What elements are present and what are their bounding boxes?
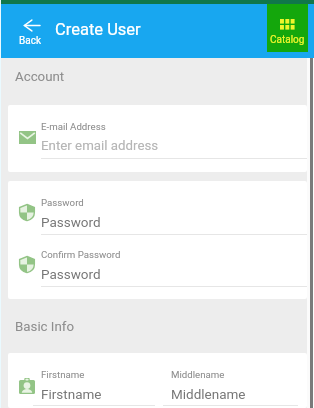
staticText: Back [19,35,41,47]
button[interactable]: Password [8,181,307,233]
button[interactable]: E-mail Address [8,105,307,157]
staticText: E-mail Address [41,121,106,132]
staticText: Password [41,214,101,230]
staticText: Password [41,197,84,208]
staticText: Firstname [41,369,85,380]
staticText: Password [41,266,101,282]
staticText: Confirm Password [41,249,121,260]
staticText: Basic Info [15,319,75,335]
button[interactable]: Back [16,19,47,47]
staticText: Account [15,69,65,85]
staticText: Catalog [270,34,305,46]
staticText: Middlename [171,369,225,380]
staticText: Enter email address [41,138,159,154]
button[interactable]: Confirm Password [8,233,307,285]
staticText: Middlename [171,386,246,402]
staticText: Create User [55,20,141,39]
staticText: Firstname [41,386,102,402]
button[interactable]: Catalog [267,4,308,52]
